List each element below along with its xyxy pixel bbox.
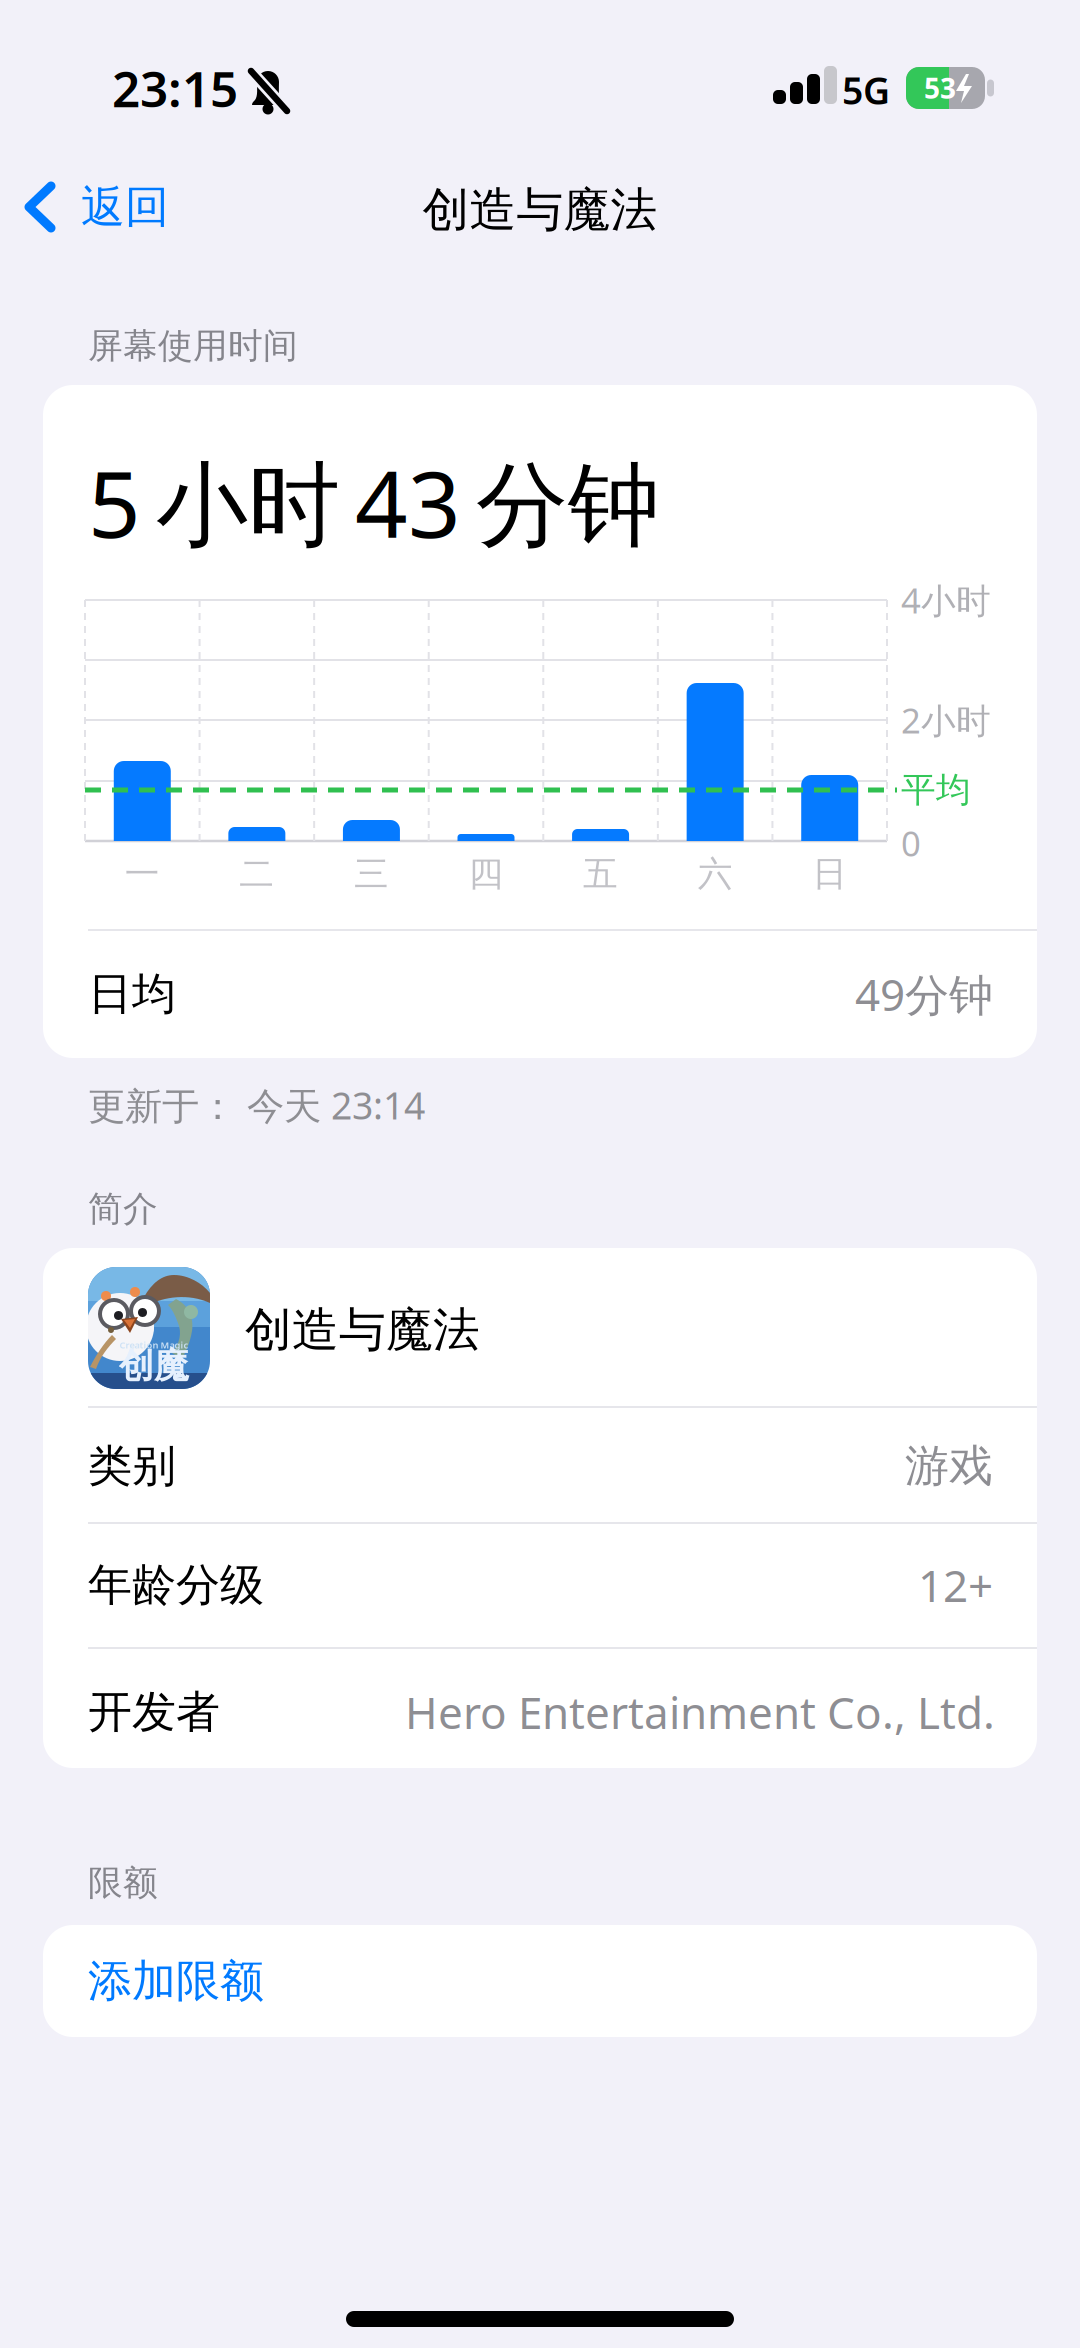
staticText: 屏幕使用时间 <box>88 325 298 367</box>
staticText: 53 <box>924 69 956 107</box>
staticText: 5G <box>842 65 890 115</box>
staticText: 五 <box>583 853 618 895</box>
staticText: 六 <box>698 853 733 895</box>
staticText: 4小时 <box>901 577 991 623</box>
staticText: 2小时 <box>901 697 991 743</box>
staticText: 类别 <box>88 1439 176 1493</box>
button[interactable]: 添加限额 <box>43 1925 1037 2037</box>
staticText: 游戏 <box>905 1439 993 1493</box>
staticText: 三 <box>354 853 389 895</box>
staticText: Creation Magic <box>119 1339 188 1351</box>
staticText: 0 <box>901 820 921 866</box>
staticText: 49分钟 <box>855 965 993 1023</box>
staticText: 23:15 <box>112 55 238 121</box>
staticText: 平均 <box>901 769 971 811</box>
staticText: 5 小时 43 分钟 <box>88 441 660 563</box>
staticText: 12+ <box>918 1556 993 1614</box>
staticText: 创造与魔法 <box>422 181 657 239</box>
staticText: 简介 <box>88 1188 158 1230</box>
staticText: 创魔 <box>119 1345 189 1387</box>
staticText: 限额 <box>88 1862 158 1904</box>
staticText: 四 <box>468 853 503 895</box>
staticText: 更新于： 今天 23:14 <box>88 1080 425 1130</box>
staticText: 日均 <box>88 967 176 1021</box>
staticText: 创造与魔法 <box>245 1301 480 1359</box>
staticText: 一 <box>125 853 160 895</box>
staticText: Hero Entertainment Co., Ltd. <box>405 1683 995 1741</box>
staticText: 开发者 <box>88 1685 220 1739</box>
staticText: 添加限额 <box>88 1954 264 2008</box>
staticText: 年龄分级 <box>88 1558 264 1612</box>
staticText: 二 <box>239 853 274 895</box>
button[interactable]: 返回 <box>21 181 251 243</box>
staticText: 日 <box>812 853 847 895</box>
staticText: 返回 <box>81 180 169 234</box>
